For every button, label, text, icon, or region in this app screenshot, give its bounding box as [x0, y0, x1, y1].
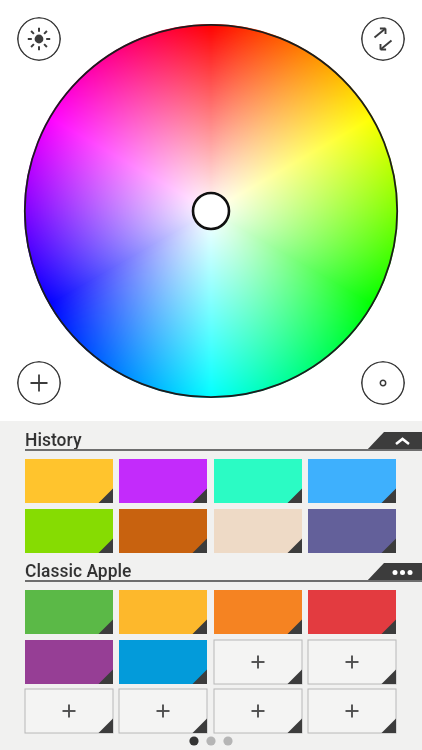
button[interactable]: Opacity	[361, 361, 405, 405]
button[interactable]: More options	[366, 563, 422, 582]
button[interactable]: Color swatch	[308, 509, 396, 553]
button[interactable]: Collapse	[366, 432, 422, 451]
button[interactable]: Add color	[214, 640, 302, 684]
button[interactable]: Add color	[308, 640, 396, 684]
button[interactable]: Color swatch	[25, 640, 113, 684]
button[interactable]: Add color	[214, 689, 302, 733]
button[interactable]: Color swatch	[214, 459, 302, 503]
button[interactable]: Color swatch	[214, 509, 302, 553]
button[interactable]: Add color	[17, 361, 61, 405]
button[interactable]: Color swatch	[25, 509, 113, 553]
button[interactable]: Color swatch	[119, 640, 207, 684]
button[interactable]: Swap colors	[361, 17, 405, 61]
button[interactable]: Color swatch	[119, 509, 207, 553]
staticText: Classic Apple	[25, 561, 132, 582]
button[interactable]: Color swatch	[119, 590, 207, 634]
button[interactable]: Add color	[25, 689, 113, 733]
button[interactable]: Color swatch	[308, 590, 396, 634]
button[interactable]: Color swatch	[25, 590, 113, 634]
staticText: History	[25, 430, 82, 451]
button[interactable]: Color swatch	[308, 459, 396, 503]
button[interactable]: Brightness	[17, 17, 61, 61]
button[interactable]: Color swatch	[214, 590, 302, 634]
button[interactable]: Add color	[119, 689, 207, 733]
button[interactable]: Color swatch	[25, 459, 113, 503]
button[interactable]: Color swatch	[119, 459, 207, 503]
button[interactable]: Add color	[308, 689, 396, 733]
